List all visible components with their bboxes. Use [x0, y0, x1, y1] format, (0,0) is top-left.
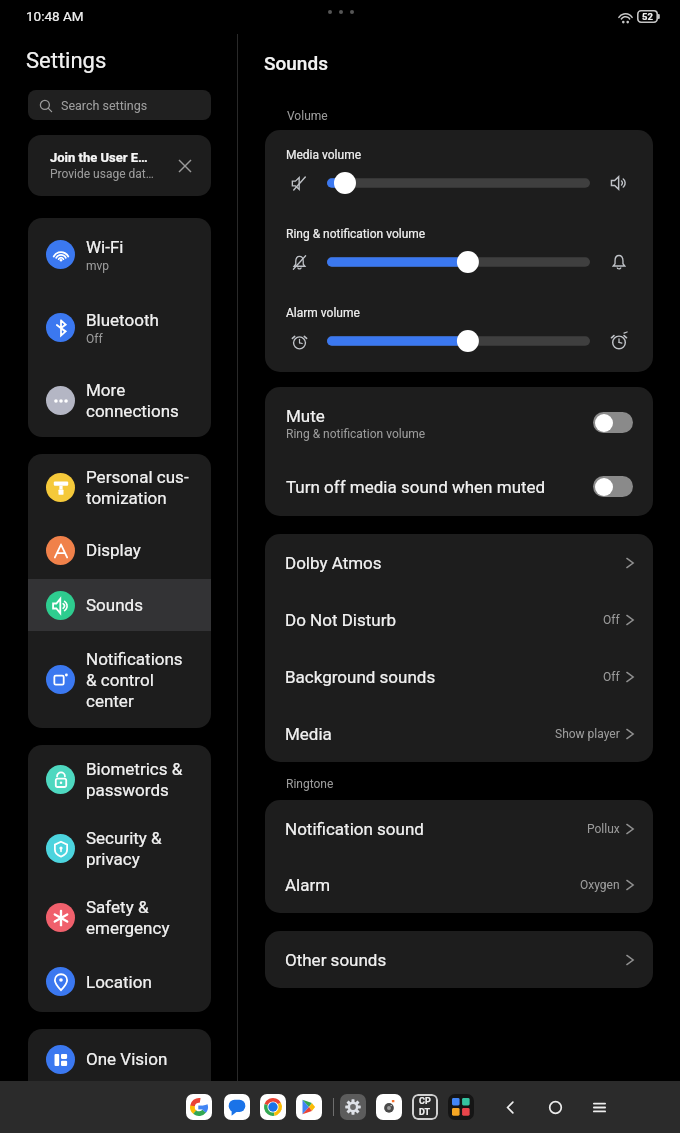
staticText: Sounds	[264, 52, 328, 74]
button[interactable]: Messages	[224, 1094, 250, 1120]
staticText: 10:48 AM	[26, 8, 84, 24]
staticText: Media	[285, 724, 555, 744]
staticText: Mute	[286, 406, 325, 426]
staticText: Settings	[26, 48, 107, 74]
button[interactable]: Dolby Atmos	[265, 534, 653, 591]
button[interactable]: One Vision	[28, 1029, 211, 1089]
staticText: Off	[86, 332, 103, 346]
staticText: Oxygen	[580, 878, 620, 892]
button[interactable]: Wi-Fi	[28, 218, 211, 291]
button[interactable]: Media	[265, 705, 653, 762]
button[interactable]: Safety & emergency	[28, 883, 211, 951]
button[interactable]: Biometrics & passwords	[28, 745, 211, 813]
button[interactable]: Security & privacy	[28, 813, 211, 883]
button[interactable]: Google	[186, 1094, 212, 1120]
button[interactable]: Display	[28, 521, 211, 579]
button[interactable]	[327, 329, 590, 353]
staticText: Security & privacy	[86, 828, 162, 869]
staticText: Off	[603, 670, 620, 684]
staticText: Do Not Disturb	[285, 610, 603, 630]
staticText: Ring & notification volume	[286, 427, 426, 441]
button[interactable]: Mute	[265, 387, 653, 457]
staticText: CP	[419, 1096, 431, 1107]
staticText: Notification sound	[285, 819, 587, 839]
button[interactable]: Sounds	[28, 579, 211, 631]
button[interactable]: Turn off media sound when muted	[265, 457, 653, 516]
staticText: Location	[86, 972, 152, 992]
staticText: Bluetooth	[86, 310, 159, 330]
staticText: Provide usage dat…	[50, 167, 154, 181]
staticText: Pollux	[587, 822, 620, 836]
button[interactable]: Notification sound	[265, 800, 653, 857]
button[interactable]: More connections	[28, 364, 211, 437]
button[interactable]: Settings	[340, 1094, 366, 1120]
button[interactable]: Location	[28, 951, 211, 1012]
button[interactable]: Camera	[376, 1094, 402, 1120]
button[interactable]: CPDT	[412, 1094, 438, 1120]
button[interactable]: Dismiss	[173, 154, 197, 178]
button[interactable]	[327, 171, 590, 195]
staticText: Notifications & control center	[86, 649, 183, 711]
staticText: Search settings	[61, 98, 148, 113]
staticText: One Vision	[86, 1049, 168, 1069]
staticText: More connections	[86, 380, 201, 421]
button[interactable]: Search settings	[28, 90, 211, 120]
staticText: Show player	[555, 727, 620, 741]
staticText: mvp	[86, 259, 110, 273]
staticText: Alarm	[285, 875, 580, 895]
staticText: Safety & emergency	[86, 897, 170, 938]
staticText: Biometrics & passwords	[86, 759, 183, 800]
staticText: Ringtone	[286, 777, 334, 791]
button[interactable]: Bluetooth	[28, 291, 211, 364]
button[interactable]: Alarm	[265, 857, 653, 913]
staticText: Ring & notification volume	[286, 227, 426, 241]
staticText: Sounds	[86, 595, 143, 615]
button[interactable]: Chrome	[260, 1094, 286, 1120]
staticText: Wi-Fi	[86, 237, 124, 257]
staticText: Background sounds	[285, 667, 603, 687]
staticText: Turn off media sound when muted	[286, 477, 546, 497]
button[interactable]: Play Store	[296, 1094, 322, 1120]
button[interactable]: Do Not Disturb	[265, 591, 653, 648]
button[interactable]: Back	[493, 1090, 527, 1124]
button[interactable]: Home	[538, 1090, 572, 1124]
staticText: Display	[86, 540, 141, 560]
button[interactable]: All apps	[448, 1094, 474, 1120]
staticText: DT	[419, 1107, 431, 1118]
staticText: Personal cus- tomization	[86, 467, 189, 508]
staticText: 52	[642, 11, 653, 22]
button[interactable]	[327, 250, 590, 274]
staticText: Media volume	[286, 148, 362, 162]
staticText: Join the User E…	[50, 150, 148, 165]
staticText: Volume	[287, 109, 328, 123]
button[interactable]: Other sounds	[265, 931, 653, 988]
staticText: Off	[603, 613, 620, 627]
staticText: Alarm volume	[286, 306, 360, 320]
staticText: Other sounds	[285, 950, 624, 970]
button[interactable]: Notifications & control center	[28, 631, 211, 728]
button[interactable]: Join the User E…	[28, 135, 211, 196]
button[interactable]: Personal cus- tomization	[28, 454, 211, 521]
staticText: Dolby Atmos	[285, 553, 624, 573]
button[interactable]: Background sounds	[265, 648, 653, 705]
button[interactable]: Recent apps	[582, 1090, 616, 1124]
